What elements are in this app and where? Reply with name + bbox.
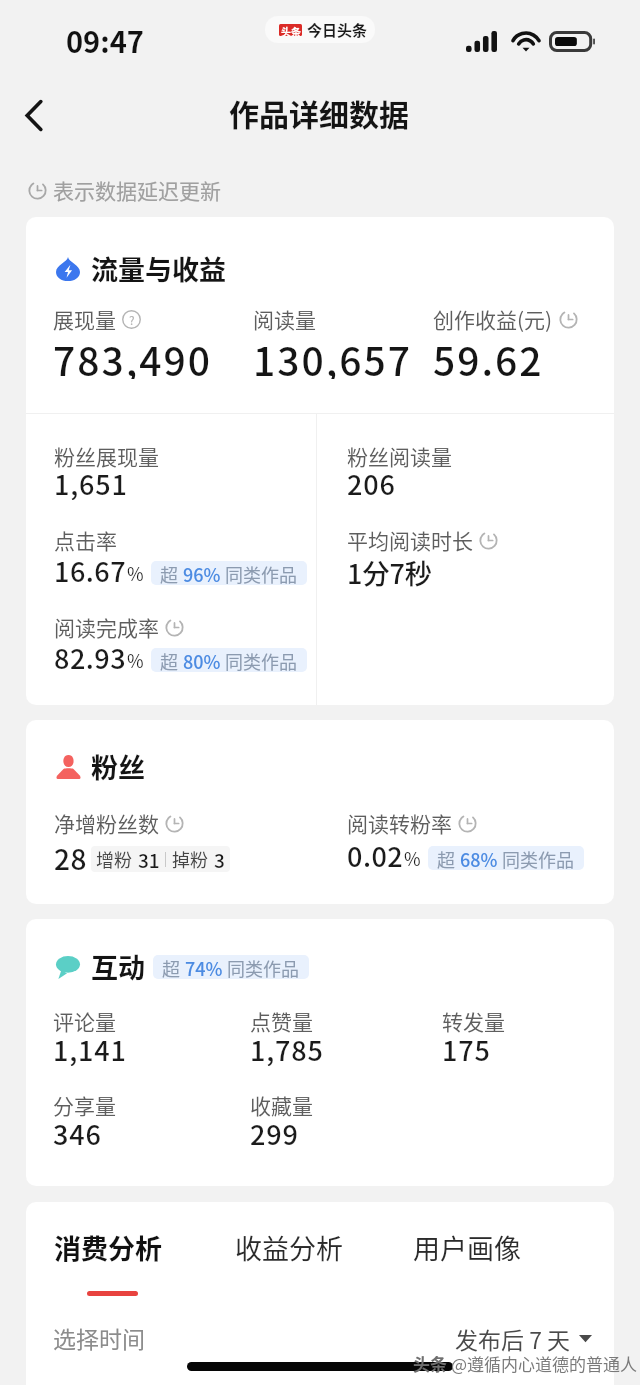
staticText: 粉丝阅读量 [347,441,452,471]
button[interactable]: 消费分析 [54,1222,162,1272]
staticText: 增粉 [96,846,132,872]
staticText: 96% [183,561,221,585]
staticText: 粉丝展现量 [54,441,159,471]
staticText: 分享量 [53,1090,116,1120]
staticText: 82.93 [54,638,127,674]
staticText: 头条 [281,24,301,36]
staticText: 阅读完成率 [54,612,159,642]
staticText: 68% [460,846,498,870]
staticText: 同类作品 [221,561,298,585]
staticText: 今日头条 [307,19,368,41]
staticText: % [404,845,421,871]
staticText: 流量与收益 [91,249,226,288]
staticText: 同类作品 [498,846,575,870]
button[interactable]: 用户画像 [413,1222,521,1272]
staticText: 评论量 [53,1006,116,1036]
staticText: 消费分析 [54,1228,162,1267]
staticText: 346 [53,1114,102,1150]
staticText: 点赞量 [250,1006,313,1036]
staticText: 展现量 [53,304,116,334]
staticText: 发布后 7 天 [455,1322,571,1355]
staticText: 超 [437,846,460,870]
staticText: 转发量 [442,1006,505,1036]
staticText: 作品详细数据 [229,91,409,134]
staticText: 175 [442,1030,491,1066]
staticText: 31 [138,846,160,872]
staticText: 299 [250,1114,299,1150]
staticText: 206 [347,464,396,500]
button[interactable]: Back [8,89,60,141]
staticText: 超 [162,955,185,979]
staticText: 0.02 [347,836,404,872]
staticText: 同类作品 [223,955,300,979]
staticText: 阅读量 [253,304,316,334]
staticText: 09:47 [66,19,144,61]
staticText: 点击率 [54,525,117,555]
staticText: 表示数据延迟更新 [53,175,221,205]
button[interactable]: 收益分析 [235,1222,343,1272]
staticText: 1,785 [250,1030,324,1066]
staticText: 选择时间 [53,1321,145,1353]
staticText: 用户画像 [413,1228,521,1267]
staticText: 掉粉 [172,846,208,872]
staticText: 粉丝 [91,747,145,786]
staticText: 3 [214,846,225,872]
staticText: 平均阅读时长 [347,525,473,555]
staticText: 收藏量 [250,1090,313,1120]
staticText: 16.67 [54,551,127,587]
staticText: 80% [183,648,221,672]
staticText: ? [129,311,135,328]
staticText: 783,490 [53,331,213,379]
staticText: 59.62 [433,331,544,379]
staticText: 1,141 [53,1030,127,1066]
staticText: 超 [160,648,183,672]
staticText: @遵循内心道德的普通人 [451,1351,638,1376]
staticText: % [127,647,144,673]
staticText: 1,651 [54,464,128,500]
staticText: 130,657 [253,331,413,379]
staticText: 1分7秒 [347,553,432,589]
staticText: 28 [54,838,87,874]
staticText: 收益分析 [235,1228,343,1267]
staticText: 超 [160,561,183,585]
staticText: 净增粉丝数 [54,808,159,838]
staticText: 头条 [413,1351,447,1376]
staticText: 互动 [91,947,145,986]
staticText: 阅读转粉率 [347,808,452,838]
staticText: 74% [185,955,223,979]
staticText: 同类作品 [221,648,298,672]
staticText: 创作收益(元) [433,304,553,334]
staticText: % [127,560,144,586]
button[interactable]: 发布后 7 天 [455,1318,592,1358]
